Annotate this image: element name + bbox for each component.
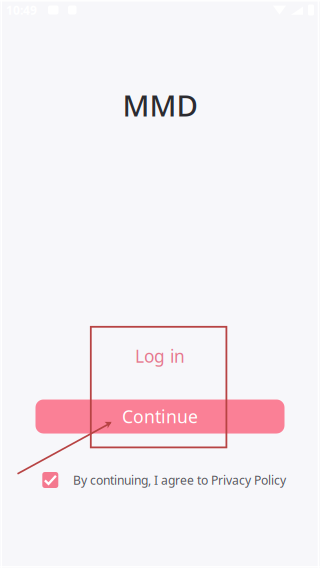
button[interactable]: Continue — [35, 399, 284, 433]
staticText: MMD — [122, 85, 197, 125]
staticText: Continue — [122, 404, 198, 428]
staticText: By continuing, I agree to Privacy Policy — [73, 472, 286, 488]
button[interactable]: Log in — [100, 337, 220, 375]
staticText: Log in — [135, 344, 185, 368]
button[interactable]: By continuing, I agree to Privacy Policy — [42, 472, 286, 488]
